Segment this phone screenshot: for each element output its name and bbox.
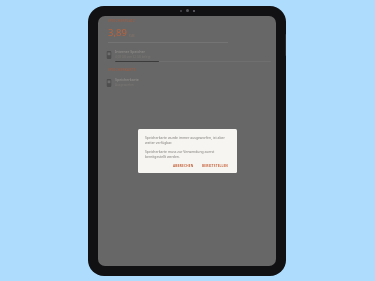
staticText: BEREITSTELLEN xyxy=(202,164,229,168)
staticText: Ausgeworfen xyxy=(115,83,134,87)
staticText: Speicherkarte wurde immer ausgeworfen, i… xyxy=(145,135,232,145)
staticText: 4,08 GB von 32 GB belegt xyxy=(115,55,151,59)
staticText: ABBRECHEN xyxy=(173,164,194,168)
staticText: SPEICHERKARTE xyxy=(108,68,136,72)
button[interactable]: BEREITSTELLEN xyxy=(199,162,232,170)
button[interactable]: ABBRECHEN xyxy=(170,162,197,170)
staticText: Speicherkarte muss zur Verwendung zuerst… xyxy=(145,149,232,159)
staticText: 3,89 xyxy=(108,26,127,39)
staticText: Speicherkarte xyxy=(115,77,139,82)
staticText: Interner Speicher xyxy=(115,49,146,54)
staticText: GB xyxy=(129,33,135,38)
button[interactable]: Interner Speicher xyxy=(98,47,276,64)
staticText: SPEICHERPLATZ xyxy=(108,19,136,23)
button[interactable]: Speicherkarte xyxy=(98,75,276,89)
